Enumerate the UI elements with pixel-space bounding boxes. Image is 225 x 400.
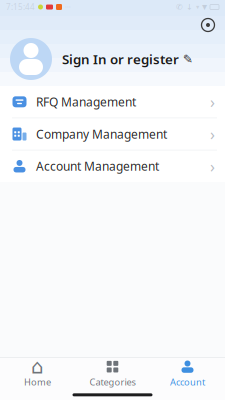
staticText: ✆ — [176, 2, 183, 12]
staticText: Account Management — [36, 158, 159, 174]
staticText: Sign In or register — [62, 50, 179, 68]
staticText: ⌂ — [31, 355, 44, 378]
staticText: 7:15:44 — [6, 2, 35, 12]
button[interactable]: Sign In or register — [0, 36, 225, 82]
staticText: › — [210, 91, 215, 112]
button[interactable]: Settings — [197, 14, 219, 36]
staticText: Home — [24, 376, 51, 388]
button[interactable]: RFQ Management — [0, 86, 225, 117]
staticText: Account — [170, 376, 205, 388]
button[interactable]: Company Management — [0, 118, 225, 150]
button[interactable]: Account Management — [0, 150, 225, 182]
button[interactable]: ⌂ — [0, 358, 75, 390]
staticText: › — [210, 156, 215, 177]
staticText: Company Management — [36, 126, 167, 142]
staticText: ▼ — [202, 3, 207, 11]
staticText: RFQ Management — [36, 94, 136, 110]
staticText: Categories — [89, 376, 135, 388]
staticText: ✎ — [183, 52, 193, 66]
staticText: › — [210, 123, 215, 145]
button[interactable]: Account — [150, 358, 225, 390]
button[interactable]: Categories — [75, 358, 150, 390]
staticText: ▾ — [196, 3, 199, 11]
staticText: ↓ — [186, 2, 193, 12]
